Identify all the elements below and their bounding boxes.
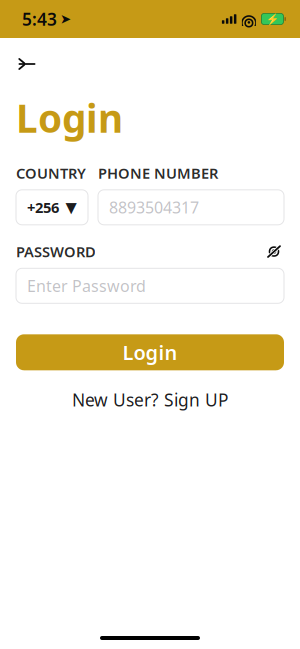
staticText: Login	[122, 339, 177, 366]
staticText: PHONE NUMBER	[98, 163, 218, 183]
staticText: ⚡	[266, 13, 279, 25]
staticText: Enter Password	[27, 275, 146, 296]
button[interactable]: Show password	[264, 244, 284, 260]
button[interactable]: Back	[0, 46, 48, 82]
button[interactable]: Enter Password	[16, 268, 284, 303]
staticText: Login	[16, 92, 123, 143]
staticText: COUNTRY	[16, 163, 86, 183]
staticText: ▼	[65, 199, 76, 216]
staticText: 8893504317	[109, 197, 199, 218]
staticText: ➤	[60, 11, 71, 26]
button[interactable]: 8893504317	[98, 190, 284, 225]
staticText: New User? Sign UP	[72, 388, 228, 411]
button[interactable]: Login	[16, 334, 284, 370]
button[interactable]: New User? Sign UP	[16, 382, 284, 417]
staticText: +256	[27, 198, 59, 217]
staticText: PASSWORD	[16, 242, 96, 261]
button[interactable]: +256	[16, 190, 88, 225]
staticText: 5:43	[22, 7, 57, 30]
